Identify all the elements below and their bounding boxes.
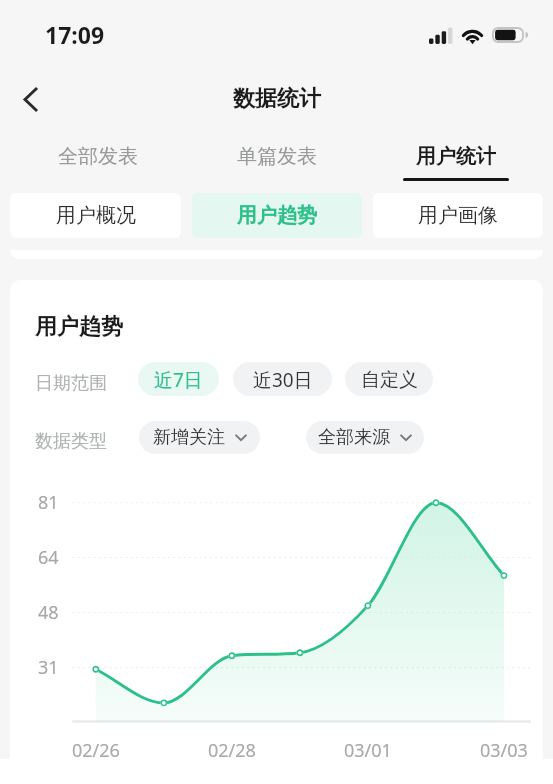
staticText: 17:09 [45,19,105,50]
staticText: 用户画像 [418,203,498,228]
staticText: 数据类型 [35,430,107,453]
staticText: 近30日 [253,367,313,393]
button[interactable]: 用户统计 [366,132,545,184]
button[interactable]: 全部发表 [8,132,187,184]
staticText: 02/28 [208,738,256,761]
button[interactable]: 全部来源 [306,421,424,454]
staticText: 用户趋势 [237,203,317,228]
button[interactable]: 用户画像 [373,193,543,238]
button[interactable]: 近7日 [138,362,219,396]
staticText: 单篇发表 [237,144,317,169]
staticText: 用户趋势 [35,313,123,341]
staticText: 31 [38,655,59,680]
staticText: 02/26 [72,738,120,761]
staticText: 全部来源 [318,426,390,449]
staticText: 03/01 [344,738,392,761]
button[interactable]: 新增关注 [139,421,260,454]
button[interactable]: Back [6,75,54,123]
staticText: 日期范围 [35,372,107,395]
button[interactable]: 用户概况 [10,193,181,238]
button[interactable]: 单篇发表 [187,132,366,184]
button[interactable]: 用户趋势 [192,193,362,238]
button[interactable]: 自定义 [345,362,433,396]
staticText: 48 [38,600,59,625]
staticText: 自定义 [361,368,418,392]
staticText: 用户概况 [56,203,136,228]
staticText: 数据统计 [233,85,321,113]
button[interactable]: 近30日 [233,362,332,396]
staticText: 81 [38,490,59,515]
staticText: 用户统计 [416,144,496,169]
staticText: 新增关注 [153,426,225,449]
staticText: 64 [38,545,59,570]
staticText: 近7日 [154,367,203,393]
staticText: 03/03 [480,738,528,761]
staticText: 全部发表 [58,144,138,169]
